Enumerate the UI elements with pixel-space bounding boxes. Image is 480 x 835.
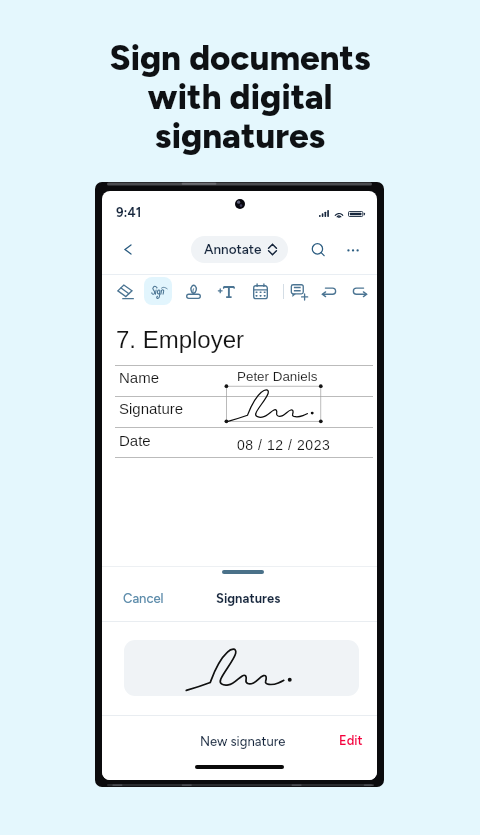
staticText: 7. Employer	[116, 326, 245, 353]
staticText: Sign documents with digital signatures	[0, 37, 480, 157]
button[interactable]: Date	[246, 277, 274, 305]
button[interactable]: Annotate	[191, 236, 288, 263]
staticText: Annotate	[204, 241, 262, 257]
staticText: 9:41	[116, 205, 142, 221]
staticText: Signatures	[216, 591, 281, 607]
button[interactable]: Comment	[285, 277, 313, 305]
staticText: 08 / 12 / 2023	[237, 437, 331, 453]
button[interactable]: Add text	[212, 277, 240, 305]
staticText: Signature	[119, 400, 184, 417]
button[interactable]: Undo	[315, 277, 343, 305]
staticText: Peter Daniels	[237, 369, 318, 384]
staticText: Name	[119, 369, 160, 386]
button[interactable]: Signature	[145, 277, 173, 305]
button[interactable]: Saved signature	[124, 640, 359, 696]
button[interactable]: Stamp	[179, 277, 207, 305]
button[interactable]: Eraser	[111, 277, 139, 305]
button[interactable]: Cancel	[123, 591, 164, 607]
button[interactable]: New signature	[200, 734, 286, 750]
button[interactable]: Redo	[345, 277, 373, 305]
button[interactable]: Search	[304, 236, 331, 263]
button[interactable]: Back	[114, 236, 141, 263]
button[interactable]: Edit	[339, 733, 363, 749]
staticText: Date	[119, 432, 151, 449]
button[interactable]: More options	[339, 236, 366, 263]
